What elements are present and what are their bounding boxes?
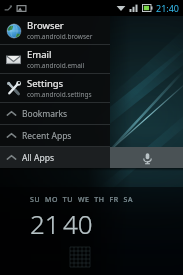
staticText: SU MO TU WE TH FR SA — [30, 195, 134, 205]
staticText: Email — [27, 48, 52, 61]
staticText: com.android.email — [27, 61, 85, 70]
button[interactable]: All Apps — [0, 147, 183, 168]
staticText: 21:40 — [156, 2, 180, 14]
button[interactable]: Voice search — [139, 150, 155, 166]
button[interactable]: SU MO TU WE TH FR SA — [30, 195, 134, 241]
staticText: Browser — [27, 19, 64, 32]
button[interactable]: Email — [0, 45, 110, 73]
button[interactable]: Bookmarks — [0, 103, 110, 124]
button[interactable]: Recent Apps — [0, 125, 110, 146]
staticText: com.android.browser — [27, 32, 93, 41]
staticText: 40 — [63, 206, 93, 241]
staticText: com.android.settings — [27, 90, 92, 99]
button[interactable]: Browser — [0, 16, 110, 44]
staticText: All Apps — [22, 152, 54, 164]
staticText: Settings — [27, 77, 64, 90]
button[interactable]: Calendar — [70, 247, 90, 267]
staticText: Recent Apps — [22, 130, 72, 142]
staticText: Bookmarks — [22, 108, 68, 120]
button[interactable]: Settings — [0, 74, 110, 102]
staticText: 21 — [30, 206, 60, 241]
